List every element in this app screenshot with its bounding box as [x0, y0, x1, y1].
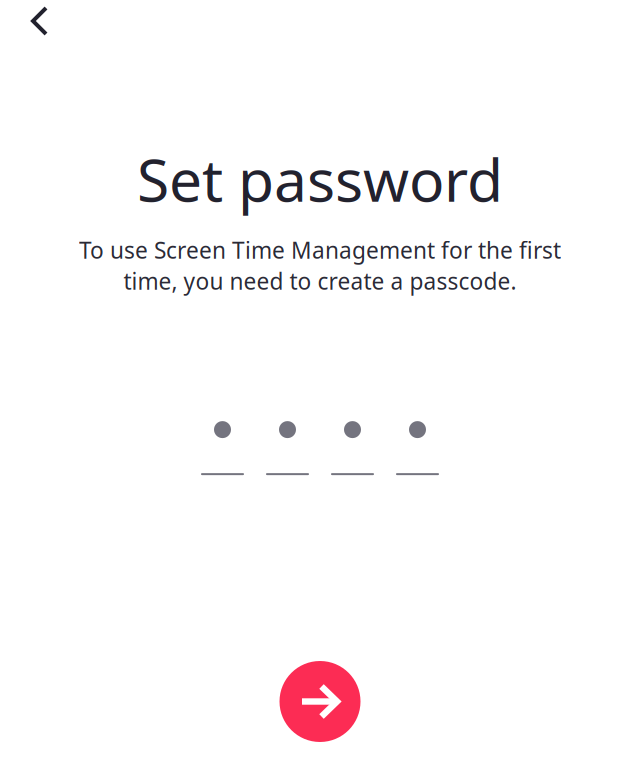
staticText: Set password — [137, 140, 503, 218]
staticText: To use Screen Time Management for the fi… — [79, 235, 561, 265]
staticText: time, you need to create a passcode. — [123, 266, 516, 296]
button[interactable]: Back — [0, 0, 65, 52]
button[interactable]: Continue — [268, 650, 371, 753]
